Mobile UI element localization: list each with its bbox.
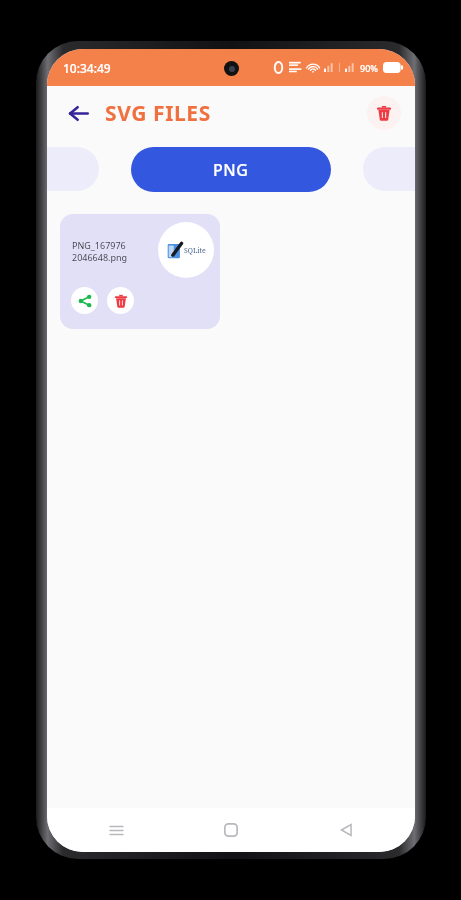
- staticText: 90%: [360, 62, 378, 74]
- staticText: 10:34:49: [63, 60, 111, 76]
- button[interactable]: Delete: [107, 287, 134, 314]
- button[interactable]: Recent apps: [97, 811, 135, 849]
- staticText: SQLite: [184, 246, 206, 256]
- button[interactable]: PNG_167976 2046648.png: [60, 214, 220, 329]
- button[interactable]: Back: [327, 811, 365, 849]
- staticText: PNG_167976 2046648.png: [72, 239, 156, 264]
- button[interactable]: Share: [71, 287, 98, 314]
- staticText: PNG: [213, 159, 249, 181]
- button[interactable]: Previous tab: [47, 147, 99, 191]
- button[interactable]: PNG: [131, 147, 331, 192]
- button[interactable]: Home: [212, 811, 250, 849]
- button[interactable]: Next tab: [363, 147, 415, 191]
- button[interactable]: Delete all: [367, 96, 401, 130]
- button[interactable]: Back: [61, 96, 95, 130]
- staticText: SVG FILES: [105, 99, 211, 128]
